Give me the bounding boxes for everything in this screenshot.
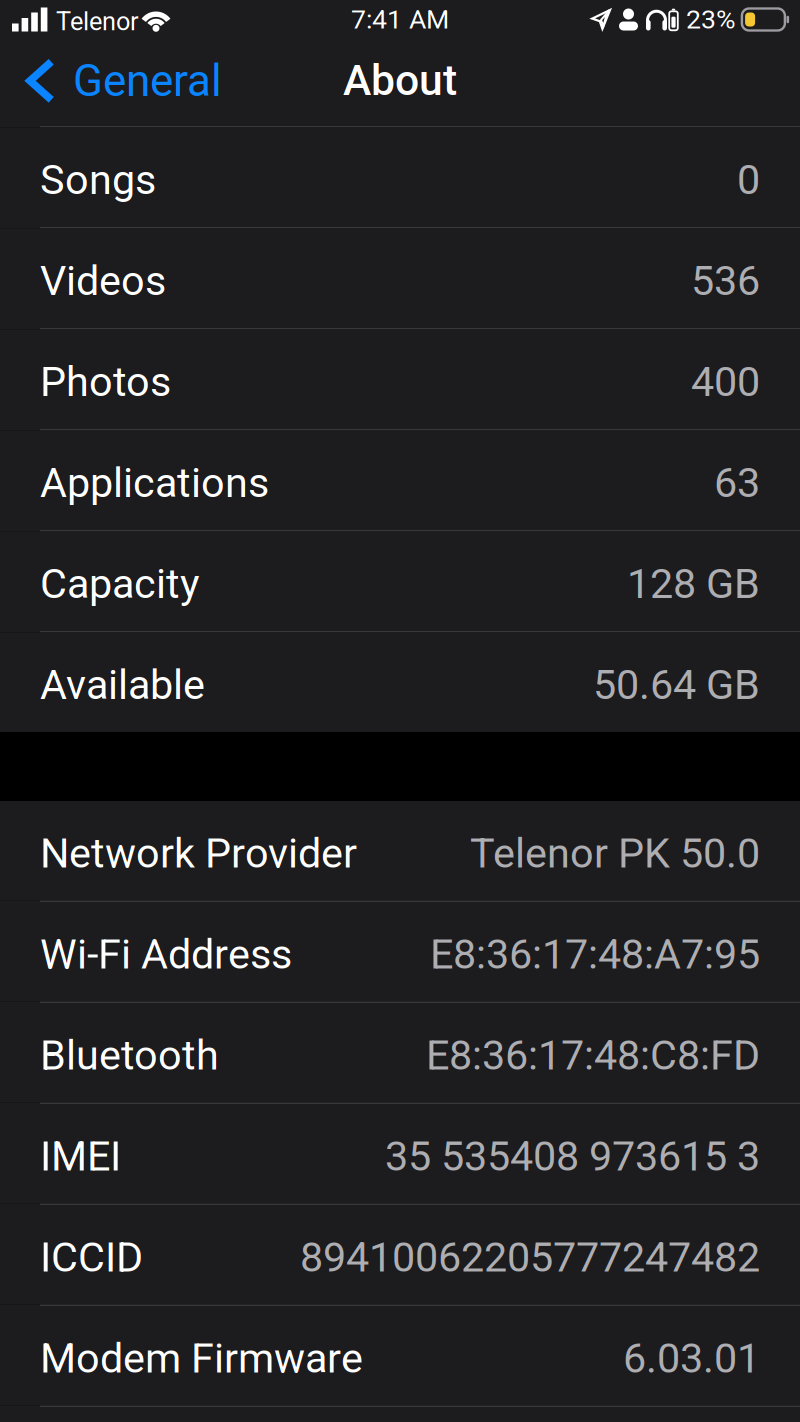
button[interactable]: Videos bbox=[0, 228, 800, 328]
button[interactable]: Applications bbox=[0, 430, 800, 530]
button[interactable]: Capacity bbox=[0, 531, 800, 631]
staticText: Wi-Fi Address bbox=[40, 930, 292, 978]
button[interactable]: ICCID bbox=[0, 1205, 800, 1304]
button[interactable]: Songs bbox=[0, 127, 800, 227]
staticText: 400 bbox=[691, 357, 760, 406]
staticText: 7:41 AM bbox=[351, 4, 449, 35]
button[interactable]: General bbox=[0, 45, 238, 126]
staticText: IMEI bbox=[40, 1132, 121, 1180]
staticText: 50.64 GB bbox=[593, 660, 760, 709]
staticText: 0 bbox=[737, 155, 760, 204]
staticText: 536 bbox=[691, 256, 760, 305]
staticText: About bbox=[343, 55, 457, 105]
button[interactable]: Wi-Fi Address bbox=[0, 902, 800, 1001]
staticText: Bluetooth bbox=[40, 1031, 219, 1079]
staticText: General bbox=[73, 55, 222, 107]
button[interactable]: Network Provider bbox=[0, 801, 800, 900]
staticText: 23% bbox=[686, 4, 736, 35]
staticText: ICCID bbox=[40, 1233, 143, 1281]
staticText: Photos bbox=[40, 357, 171, 406]
staticText: Applications bbox=[40, 458, 269, 507]
button[interactable]: Available bbox=[0, 632, 800, 732]
staticText: 89410062205777247482 bbox=[300, 1233, 760, 1281]
staticText: 6.03.01 bbox=[623, 1334, 760, 1382]
staticText: Telenor PK 50.0 bbox=[470, 829, 760, 877]
staticText: Available bbox=[40, 660, 205, 709]
staticText: Capacity bbox=[40, 559, 200, 608]
staticText: 63 bbox=[714, 458, 760, 507]
staticText: 35 535408 973615 3 bbox=[385, 1132, 760, 1180]
button[interactable]: IMEI bbox=[0, 1104, 800, 1203]
staticText: 128 GB bbox=[627, 559, 760, 608]
staticText: Songs bbox=[40, 155, 156, 204]
staticText: Telenor bbox=[56, 7, 139, 36]
staticText: Videos bbox=[40, 256, 166, 305]
staticText: E8:36:17:48:C8:FD bbox=[426, 1031, 760, 1079]
button[interactable]: Photos bbox=[0, 329, 800, 429]
staticText: E8:36:17:48:A7:95 bbox=[430, 930, 760, 978]
staticText: Modem Firmware bbox=[40, 1334, 363, 1382]
button[interactable]: Bluetooth bbox=[0, 1003, 800, 1102]
button[interactable]: Modem Firmware bbox=[0, 1306, 800, 1405]
staticText: Network Provider bbox=[40, 829, 357, 877]
